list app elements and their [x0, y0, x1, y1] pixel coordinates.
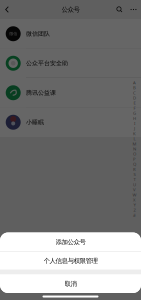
- staticText: W: [132, 192, 136, 198]
- staticText: 微信团队: [26, 30, 50, 38]
- staticText: I: [134, 120, 135, 126]
- staticText: M: [132, 141, 136, 147]
- staticText: 微信: [9, 31, 17, 36]
- button[interactable]: More: [126, 0, 141, 19]
- staticText: 公众号: [61, 5, 79, 13]
- staticText: 取消: [64, 280, 76, 288]
- staticText: 腾讯公益课: [26, 89, 56, 97]
- staticText: Z: [133, 207, 135, 213]
- staticText: E: [133, 100, 135, 106]
- staticText: 添加公众号: [55, 238, 85, 246]
- staticText: S: [133, 171, 135, 177]
- staticText: A: [133, 80, 136, 85]
- staticText: C: [133, 90, 136, 96]
- staticText: #: [133, 212, 136, 218]
- staticText: 公众平台安全助: [26, 59, 68, 67]
- staticText: O: [133, 151, 136, 157]
- staticText: X: [133, 197, 136, 203]
- staticText: L: [133, 136, 135, 141]
- staticText: R: [133, 166, 136, 172]
- staticText: Q: [133, 161, 136, 167]
- button[interactable]: 个人信息与权限管理: [0, 252, 141, 269]
- button[interactable]: 取消: [0, 274, 141, 293]
- staticText: T: [133, 176, 135, 182]
- staticText: G: [133, 110, 136, 116]
- button[interactable]: Back: [0, 0, 14, 19]
- staticText: B: [133, 85, 136, 90]
- staticText: Y: [133, 202, 135, 208]
- button[interactable]: 腾讯公益课: [0, 78, 141, 107]
- staticText: D: [133, 95, 136, 101]
- staticText: P: [133, 156, 136, 162]
- staticText: F: [133, 105, 135, 111]
- button[interactable]: 小睡眠: [0, 107, 141, 137]
- button[interactable]: Search: [113, 0, 126, 19]
- button[interactable]: 公众平台安全助: [0, 48, 141, 78]
- staticText: U: [133, 182, 136, 187]
- staticText: H: [133, 115, 136, 121]
- staticText: 个人信息与权限管理: [43, 257, 97, 265]
- button[interactable]: 添加公众号: [0, 232, 141, 251]
- staticText: J: [134, 125, 135, 131]
- button[interactable]: 微信: [0, 19, 141, 48]
- staticText: N: [133, 146, 136, 152]
- staticText: K: [133, 131, 136, 136]
- staticText: V: [133, 187, 136, 192]
- staticText: 小睡眠: [26, 118, 44, 126]
